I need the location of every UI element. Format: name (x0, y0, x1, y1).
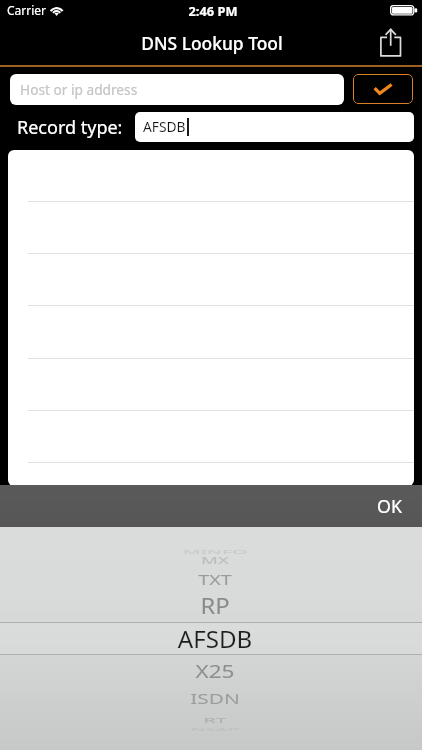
button[interactable] (8, 359, 414, 411)
staticText: AFSDB (143, 117, 186, 136)
button[interactable] (8, 254, 414, 306)
button[interactable]: Run lookup (353, 74, 413, 104)
staticText: TXT (4, 569, 422, 590)
button[interactable] (8, 150, 414, 202)
staticText: OK (377, 494, 402, 518)
staticText: ISDN (4, 688, 422, 708)
staticText: DNS Lookup Tool (1, 31, 422, 55)
button[interactable] (8, 463, 414, 486)
staticText: Record type: (17, 115, 123, 140)
button[interactable]: OK (377, 485, 402, 527)
button[interactable]: AFSDB (135, 112, 414, 142)
button[interactable] (8, 307, 414, 359)
staticText: X25 (4, 658, 422, 683)
staticText: Carrier (7, 2, 47, 18)
staticText: 2:46 PM (2, 2, 422, 19)
staticText: RP (4, 592, 422, 620)
button[interactable]: Share (373, 22, 411, 60)
staticText: Host or ip address (20, 80, 138, 99)
button[interactable] (8, 202, 414, 254)
button[interactable] (8, 411, 414, 463)
staticText: AFSDB (4, 622, 422, 655)
button[interactable] (0, 622, 422, 655)
staticText: MX (4, 554, 422, 567)
button[interactable]: Host or ip address (10, 74, 344, 105)
